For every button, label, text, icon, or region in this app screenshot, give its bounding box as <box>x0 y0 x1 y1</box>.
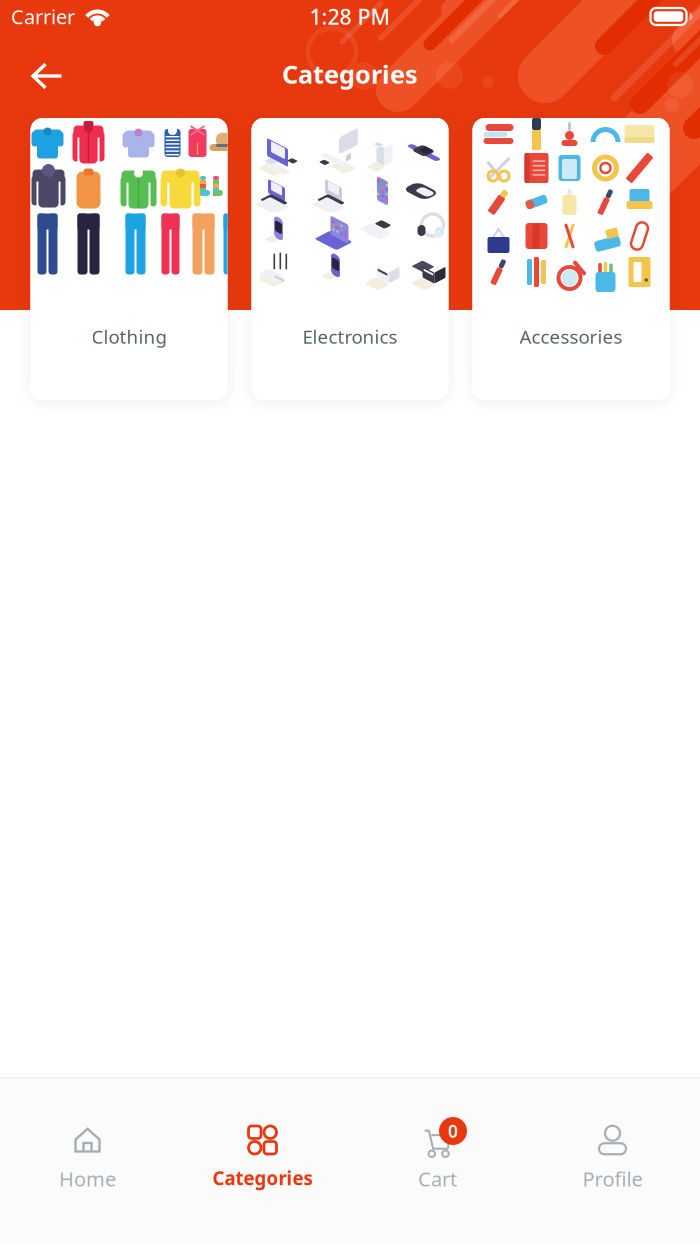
staticText: Profile <box>582 1165 642 1192</box>
staticText: Home <box>59 1165 116 1192</box>
button[interactable]: Electronics <box>251 118 448 400</box>
staticText: Categories <box>212 1165 312 1190</box>
button[interactable]: Home <box>0 1078 175 1161</box>
staticText: Accessories <box>519 324 622 349</box>
button[interactable]: Back <box>0 50 79 102</box>
staticText: Carrier <box>11 3 75 30</box>
staticText: 1:28 PM <box>309 2 390 31</box>
button[interactable]: 0 <box>350 1078 525 1161</box>
button[interactable]: Clothing <box>30 118 227 400</box>
staticText: 0 <box>448 1119 458 1142</box>
button[interactable]: Accessories <box>472 118 669 400</box>
staticText: Categories <box>282 57 418 91</box>
button[interactable]: Profile <box>525 1078 700 1161</box>
staticText: Clothing <box>91 324 166 349</box>
staticText: Cart <box>418 1165 457 1192</box>
staticText: Electronics <box>302 324 397 349</box>
button[interactable]: Categories <box>175 1078 350 1161</box>
